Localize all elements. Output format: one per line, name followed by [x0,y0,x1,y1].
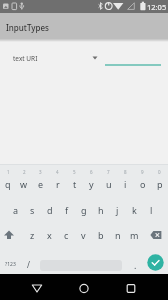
button[interactable]: 6 [83,165,100,195]
staticText: 4 [56,169,59,175]
staticText: 9 [141,169,144,175]
staticText: 2 [23,169,26,175]
staticText: 8 [124,169,127,175]
staticText: a [13,204,19,216]
button[interactable]: . [124,248,146,274]
button[interactable]: j [109,195,126,221]
button[interactable]: 3 [32,165,49,195]
staticText: i [124,178,127,190]
staticText: h [98,204,104,216]
button[interactable]: l [143,195,160,221]
button[interactable]: 9 [134,165,151,195]
staticText: z [30,229,35,241]
button[interactable] [143,221,168,248]
staticText: . [134,259,137,271]
staticText: e [38,178,44,190]
staticText: 12:05 [147,2,167,12]
staticText: InputTypes [6,22,49,33]
button[interactable]: g [75,195,92,221]
staticText: 5 [73,169,76,175]
staticText: u [106,178,112,190]
button[interactable]: 4 [49,165,66,195]
staticText: 7 [107,169,110,175]
button[interactable]: 8 [117,165,134,195]
staticText: r [56,178,60,190]
staticText: j [116,204,119,216]
staticText: 6 [90,169,93,175]
staticText: text URI [13,54,38,63]
button[interactable] [37,260,124,271]
button[interactable]: h [92,195,109,221]
staticText: p [157,178,163,190]
button[interactable]: c [58,221,75,248]
staticText: s [30,204,35,216]
button[interactable]: k [126,195,143,221]
staticText: g [81,204,87,216]
button[interactable]: x [41,221,58,248]
staticText: b [98,229,104,241]
staticText: w [20,178,28,190]
button[interactable]: f [58,195,75,221]
button[interactable]: 2 [16,165,32,195]
button[interactable]: z [24,221,41,248]
staticText: f [65,204,69,216]
button[interactable] [27,278,47,298]
staticText: y [89,178,94,190]
staticText: v [81,229,86,241]
staticText: k [132,204,137,216]
button[interactable] [121,278,141,298]
button[interactable] [74,278,94,298]
staticText: ?123 [5,261,16,268]
staticText: d [47,204,53,216]
button[interactable] [146,248,168,274]
staticText: m [130,229,139,241]
staticText: 1 [7,169,10,175]
button[interactable] [0,221,24,248]
staticText: n [115,229,121,241]
button[interactable]: a [8,195,24,221]
button[interactable]: v [75,221,92,248]
staticText: c [64,229,69,241]
button[interactable]: s [24,195,41,221]
button[interactable]: m [126,221,143,248]
button[interactable]: 0 [151,165,168,195]
staticText: l [150,204,153,216]
button[interactable]: text URI [0,51,102,65]
button[interactable]: ?123 [0,248,20,274]
staticText: q [5,178,11,190]
staticText: o [140,178,146,190]
staticText: / [27,259,30,270]
staticText: 3 [39,169,42,175]
button[interactable]: n [109,221,126,248]
button[interactable]: d [41,195,58,221]
button[interactable]: / [20,248,37,274]
button[interactable]: b [92,221,109,248]
button[interactable]: 5 [66,165,83,195]
staticText: x [47,229,52,241]
button[interactable]: 7 [100,165,117,195]
staticText: 0 [158,169,161,175]
button[interactable]: 1 [0,165,16,195]
staticText: t [73,178,77,190]
